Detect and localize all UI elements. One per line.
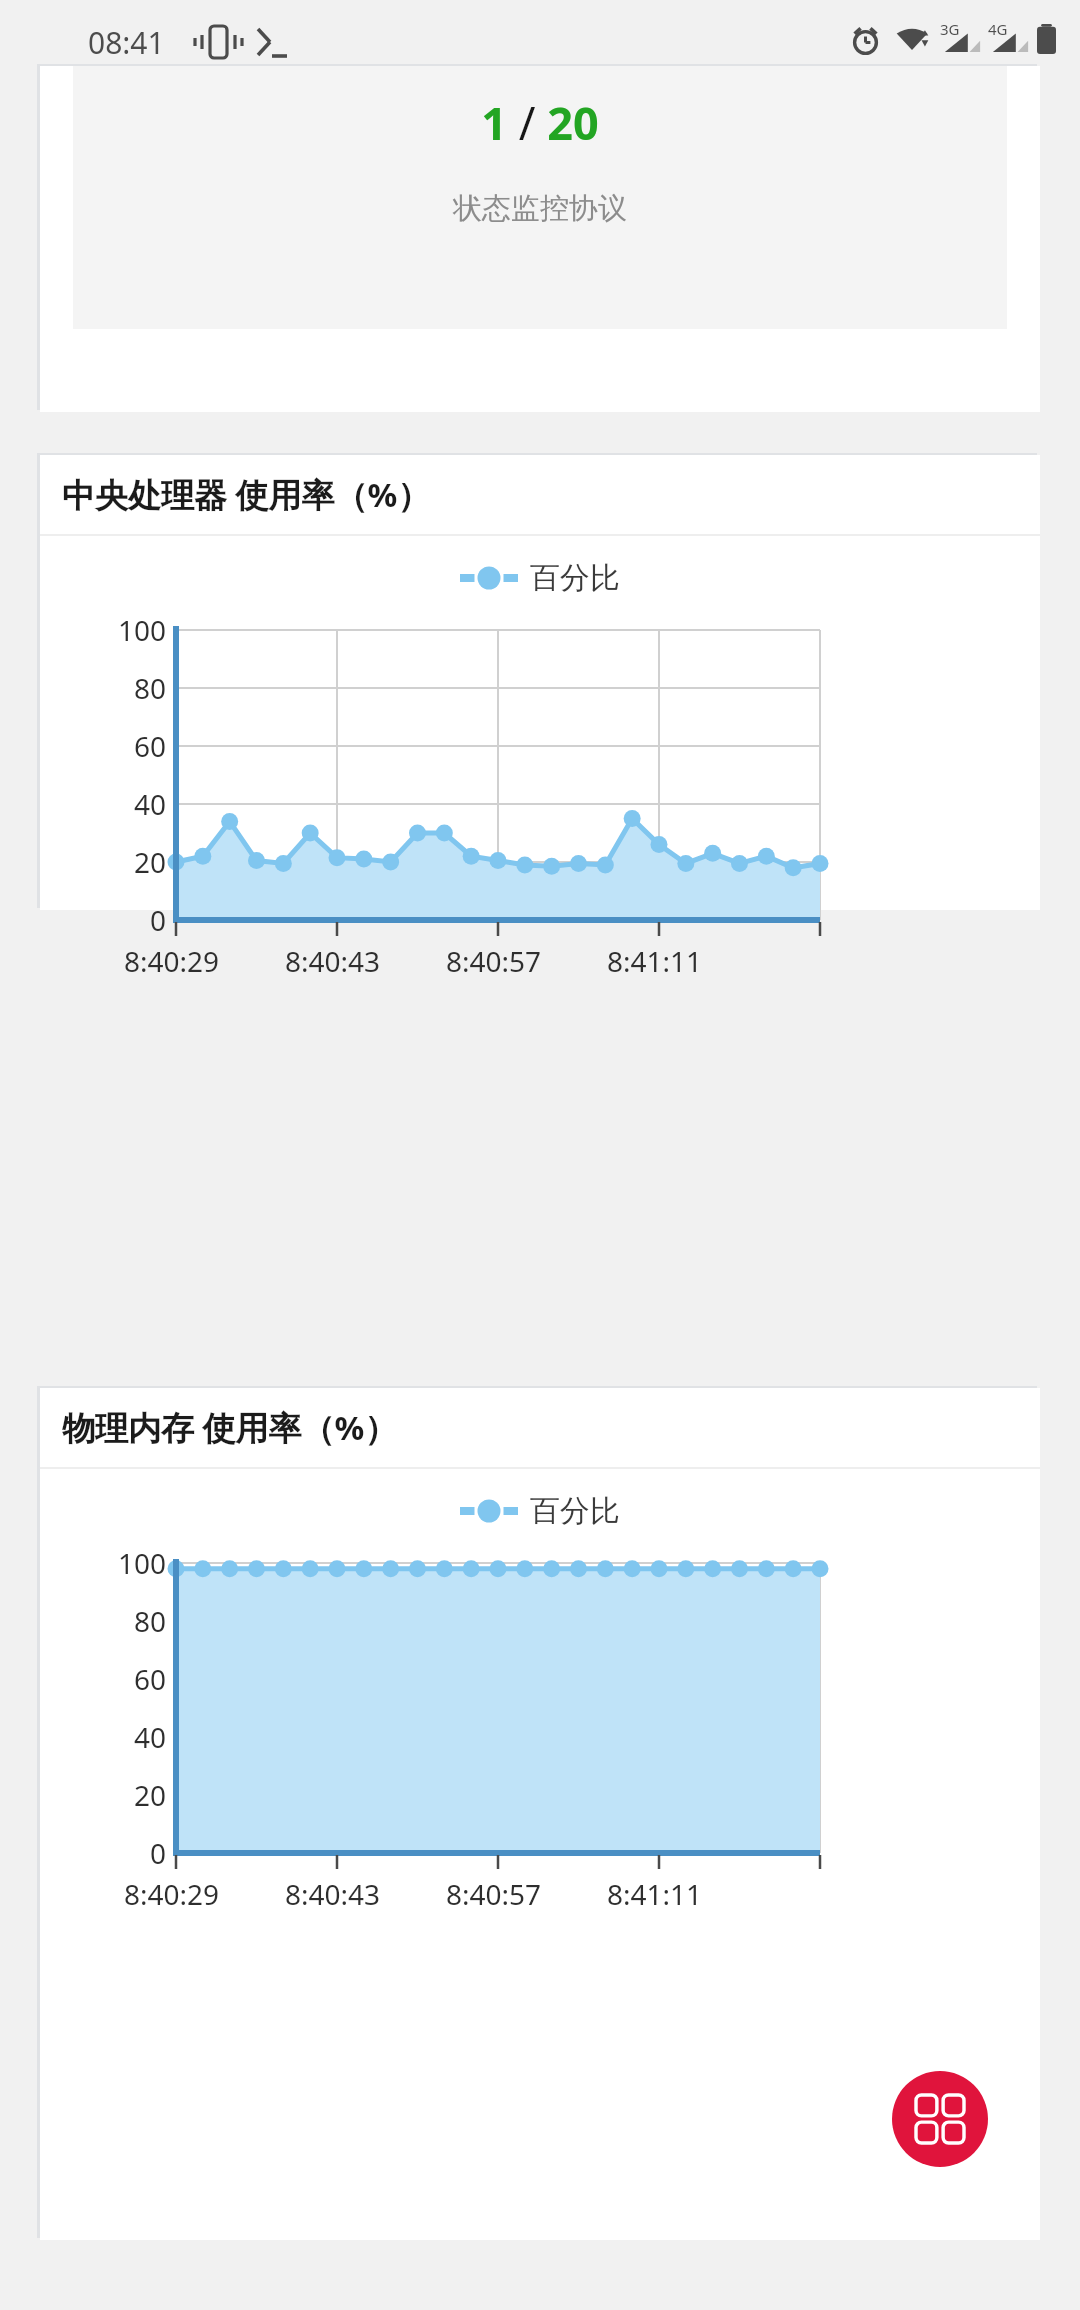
staticText: 60 — [60, 727, 166, 765]
button[interactable]: 应用面板 — [892, 2071, 988, 2167]
staticText: 0 — [60, 1834, 166, 1872]
staticText: 20 — [60, 843, 166, 881]
staticText: 80 — [60, 1602, 166, 1640]
staticText: 8:40:29 — [124, 942, 220, 980]
staticText: 8:40:29 — [124, 1875, 220, 1913]
staticText: 80 — [60, 669, 166, 707]
staticText: 8:41:11 — [607, 942, 703, 980]
staticText: 8:40:43 — [285, 1875, 381, 1913]
staticText: 物理内存 使用率（%） — [62, 1405, 398, 1450]
staticText: 100 — [60, 611, 166, 649]
staticText: 20 — [60, 1776, 166, 1814]
staticText: 08:41 — [88, 22, 165, 63]
staticText: 60 — [60, 1660, 166, 1698]
button[interactable]: 中央处理器 使用率（%） — [40, 455, 1040, 910]
staticText: 0 — [60, 901, 166, 939]
staticText: 40 — [60, 785, 166, 823]
staticText: 8:40:43 — [285, 942, 381, 980]
staticText: 8:40:57 — [446, 942, 542, 980]
button[interactable]: 1 / 20 — [40, 66, 1040, 412]
staticText: 40 — [60, 1718, 166, 1756]
staticText: 1 / 20 — [73, 92, 1007, 153]
staticText: 8:40:57 — [446, 1875, 542, 1913]
staticText: 8:41:11 — [607, 1875, 703, 1913]
staticText: 状态监控协议 — [73, 190, 1007, 227]
button[interactable]: 物理内存 使用率（%） — [40, 1388, 1040, 2240]
staticText: 百分比 — [530, 559, 620, 597]
staticText: 中央处理器 使用率（%） — [62, 472, 431, 517]
staticText: 3G — [940, 19, 960, 39]
staticText: 百分比 — [530, 1492, 620, 1530]
staticText: 100 — [60, 1544, 166, 1582]
staticText: 4G — [988, 19, 1008, 39]
